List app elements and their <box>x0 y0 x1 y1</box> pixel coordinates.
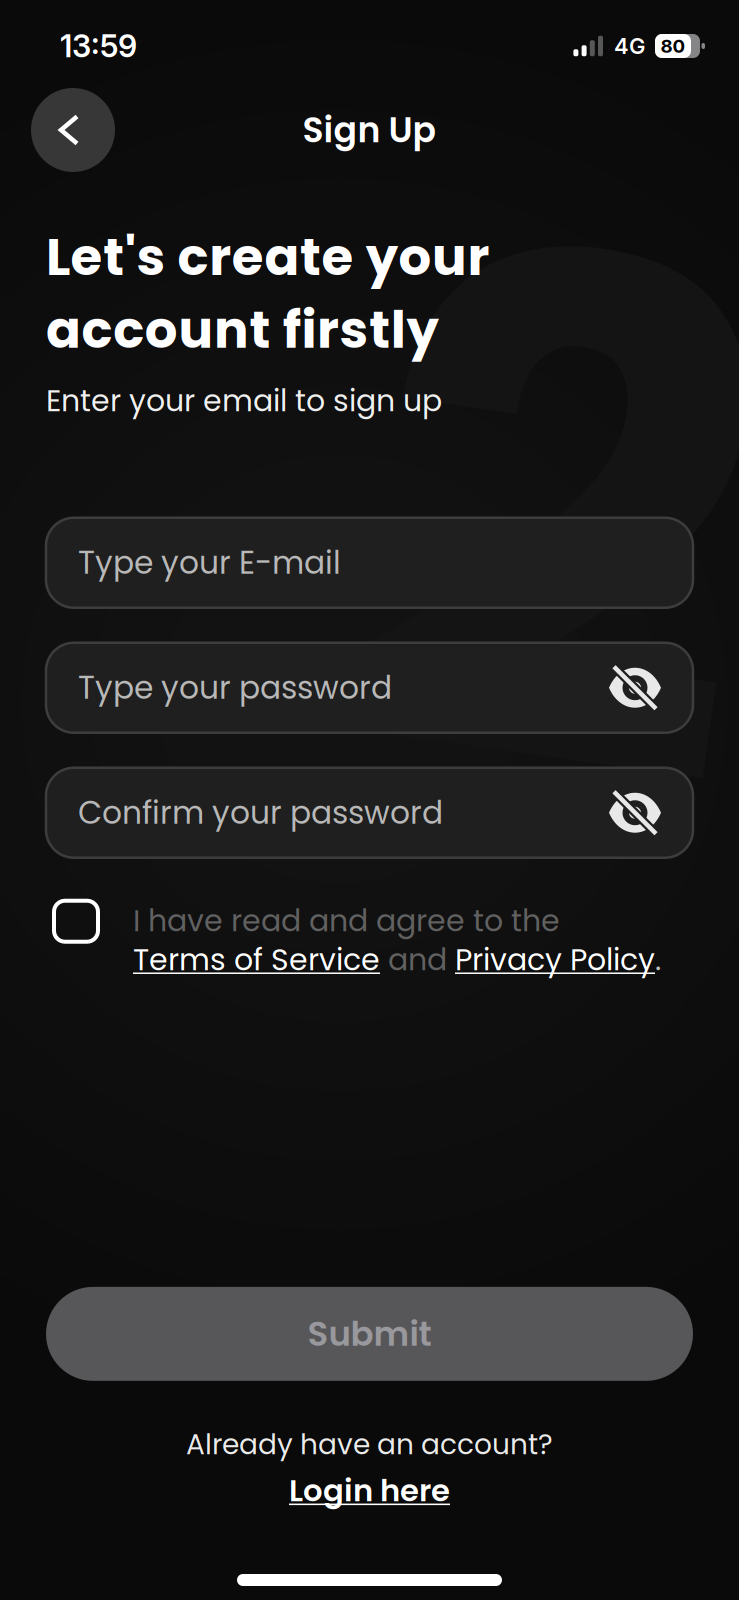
staticText: Let's create your account firstly <box>46 221 490 366</box>
staticText: Enter your email to sign up <box>46 380 442 422</box>
staticText: Confirm your password <box>78 791 443 835</box>
staticText: Login here <box>289 1469 450 1512</box>
button[interactable]: Login here <box>289 1469 450 1512</box>
button[interactable]: Agree to terms <box>54 901 98 942</box>
staticText: Type your password <box>78 666 392 710</box>
staticText: 2 <box>362 35 739 1005</box>
button[interactable]: Privacy Policy <box>455 939 655 981</box>
button[interactable]: Terms of Service <box>133 939 380 981</box>
staticText: Sign Up <box>302 106 436 154</box>
staticText: . <box>655 939 661 981</box>
staticText: I have read and agree to the <box>133 900 560 942</box>
staticText: Type your E-mail <box>78 541 341 585</box>
staticText: and <box>380 939 455 981</box>
staticText: Submit <box>307 1310 431 1358</box>
button[interactable]: Show password <box>607 664 663 712</box>
button[interactable]: Show password <box>607 789 663 837</box>
staticText: 13:59 <box>60 27 137 64</box>
button[interactable]: Submit <box>46 1287 693 1381</box>
staticText: Terms of Service <box>133 939 380 981</box>
staticText: 4G <box>614 33 645 59</box>
button[interactable]: Back <box>31 88 115 172</box>
staticText: Already have an account? <box>186 1425 553 1464</box>
staticText: 80 <box>660 35 685 57</box>
staticText: Privacy Policy <box>455 939 655 981</box>
